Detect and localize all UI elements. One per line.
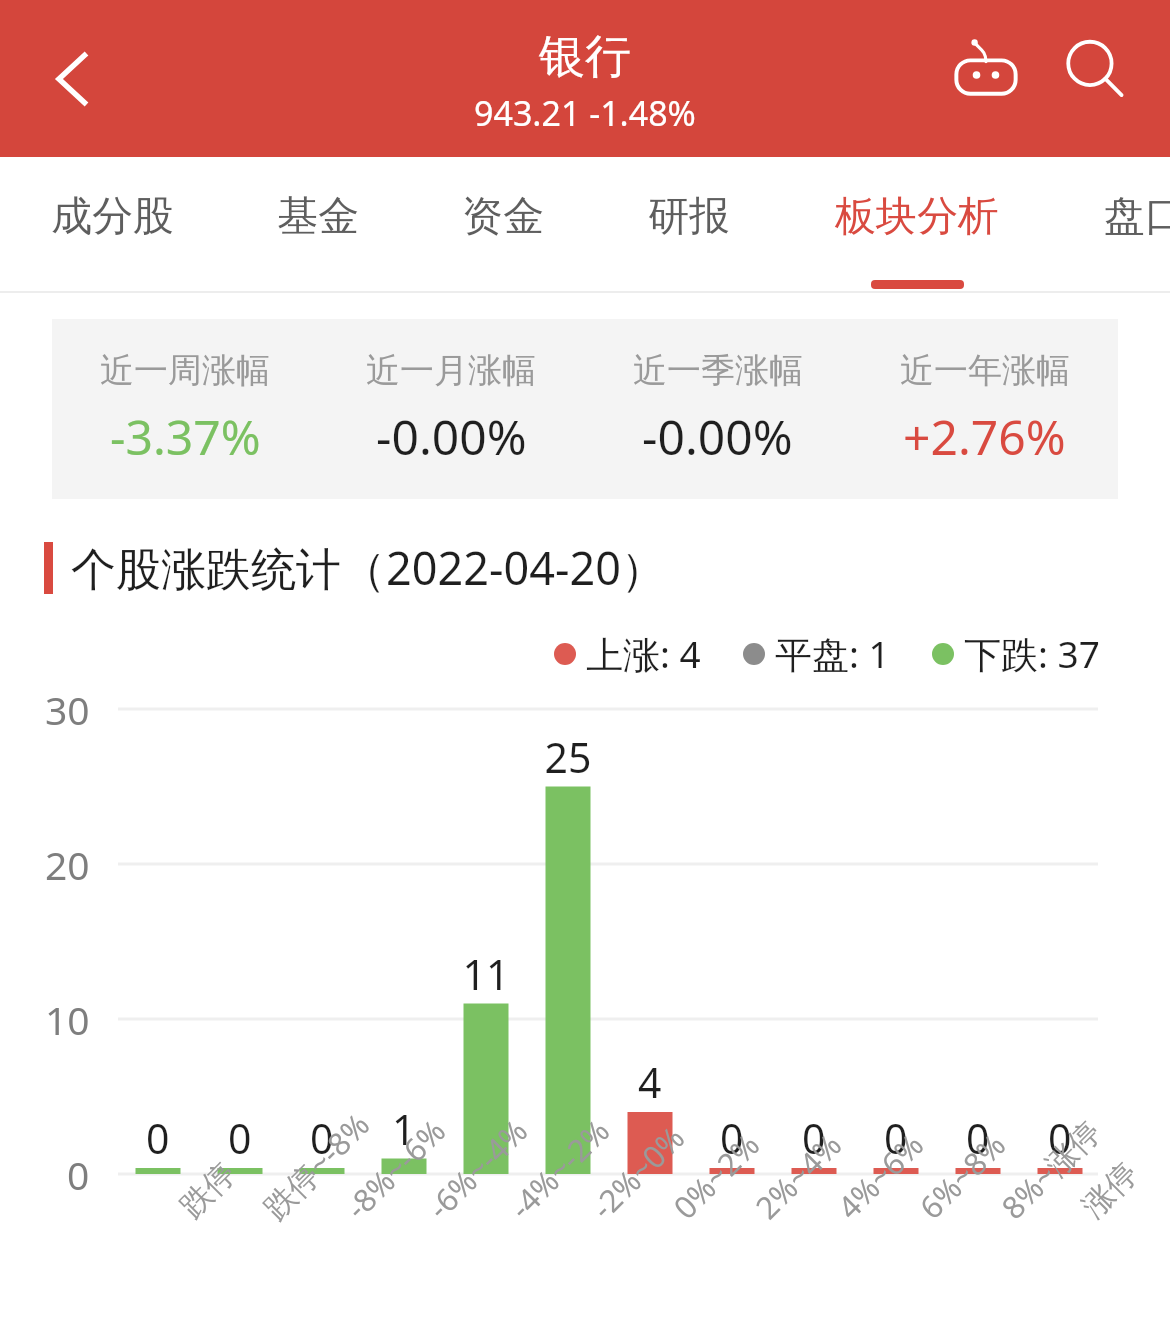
button[interactable]: Assistant [940,25,1032,117]
button[interactable]: 近一季涨幅 [584,319,851,499]
button[interactable]: 资金 [403,157,603,277]
staticText: 近一季涨幅 [633,349,803,392]
button[interactable]: 研报 [589,157,789,277]
staticText: -0.00% [642,404,793,469]
staticText: 基金 [277,191,359,243]
button[interactable]: 平盘: 1 [743,628,890,679]
staticText: 银行 [539,28,631,86]
staticText: 板块分析 [835,191,999,243]
staticText: 资金 [462,191,544,243]
button[interactable]: 近一月涨幅 [318,319,584,499]
staticText: 成分股 [51,191,174,243]
staticText: +2.76% [903,404,1066,469]
staticText: 近一周涨幅 [100,349,270,392]
staticText: 平盘: 1 [775,628,890,679]
button[interactable]: 近一年涨幅 [851,319,1118,499]
button[interactable]: 盘口 [1045,157,1170,277]
button[interactable]: 下跌: 37 [932,628,1100,679]
staticText: 个股涨跌统计（2022-04-20） [71,537,666,598]
staticText: 下跌: 37 [964,628,1100,679]
staticText: 近一年涨幅 [900,349,1070,392]
button[interactable]: Search [1050,25,1142,117]
staticText: 近一月涨幅 [366,349,536,392]
button[interactable]: 板块分析 [817,157,1017,277]
staticText: -0.00% [376,404,527,469]
staticText: 研报 [648,191,730,243]
button[interactable]: Back [30,36,116,122]
button[interactable]: 基金 [218,157,418,277]
button[interactable]: 成分股 [12,157,212,277]
staticText: 上涨: 4 [586,628,701,679]
staticText: 943.21 -1.48% [474,90,696,136]
staticText: -3.37% [110,404,261,469]
staticText: 盘口 [1104,191,1170,243]
button[interactable]: 上涨: 4 [554,628,701,679]
button[interactable]: 近一周涨幅 [52,319,318,499]
